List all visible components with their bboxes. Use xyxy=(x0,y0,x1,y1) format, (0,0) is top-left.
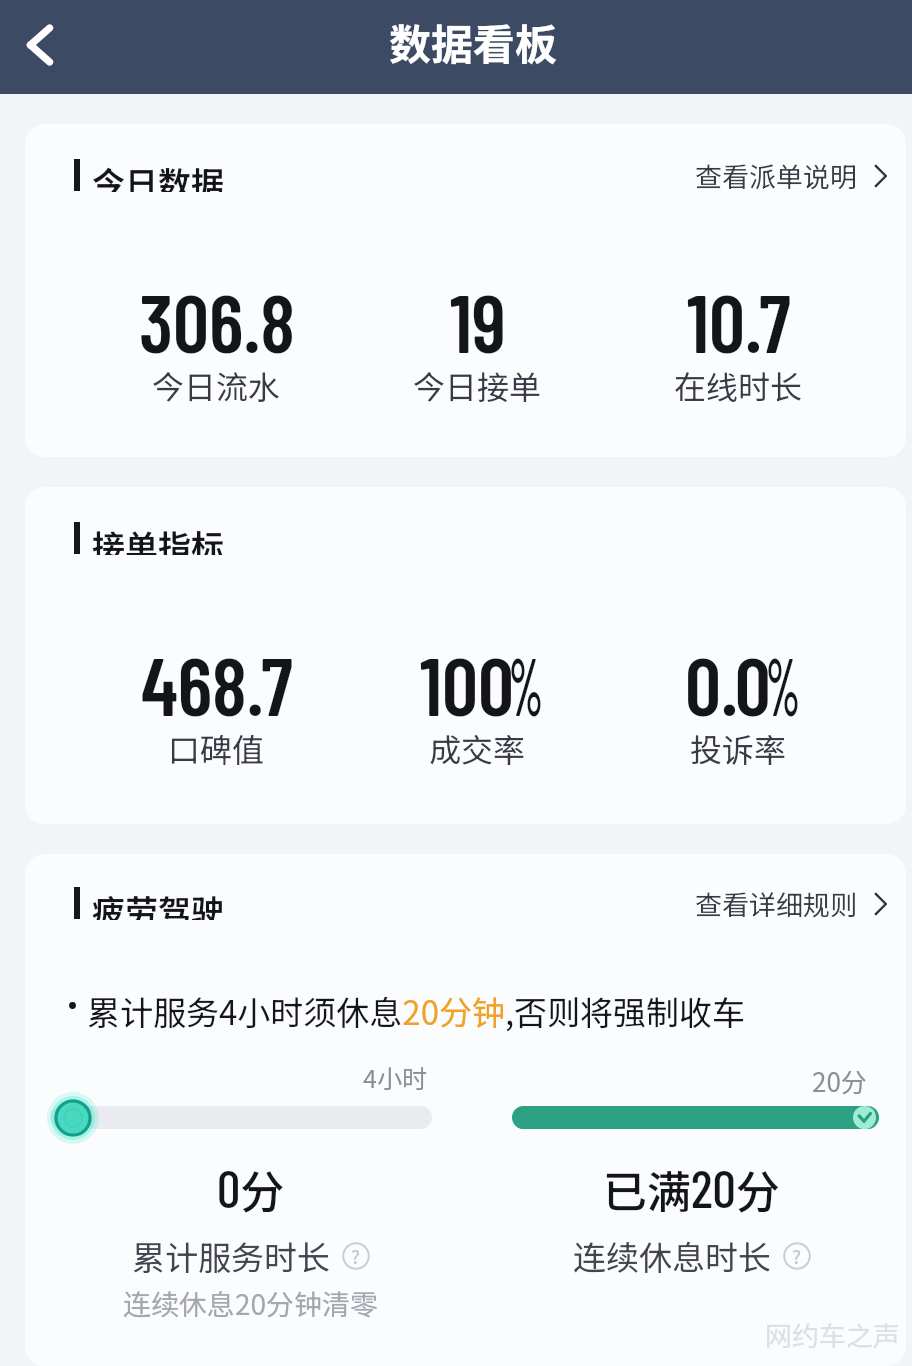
staticText: 连续休息时长 xyxy=(573,1232,771,1280)
staticText: 306.8 xyxy=(139,273,295,369)
button[interactable]: Help xyxy=(342,1242,370,1270)
staticText: 连续休息20分钟清零 xyxy=(123,1283,379,1324)
staticText: ? xyxy=(792,1242,802,1270)
staticText: 19 xyxy=(450,273,506,369)
staticText: ? xyxy=(351,1242,361,1270)
staticText: 投诉率 xyxy=(690,725,787,771)
staticText: % xyxy=(766,636,778,732)
staticText: 数据看板 xyxy=(389,11,558,72)
staticText: 已满20分 xyxy=(603,1156,780,1221)
staticText: 在线时长 xyxy=(674,362,803,408)
staticText: 查看派单说明 xyxy=(695,156,857,195)
staticText: 成交率 xyxy=(429,725,526,771)
button[interactable]: Help xyxy=(783,1242,811,1270)
staticText: % xyxy=(509,636,521,732)
staticText: 10.7 xyxy=(687,273,791,369)
staticText: 今日数据 xyxy=(92,158,224,192)
staticText: 20分 xyxy=(812,1062,867,1100)
staticText: 100 xyxy=(420,636,514,732)
staticText: 疲劳驾驶 xyxy=(92,886,224,920)
staticText: 今日流水 xyxy=(152,362,281,408)
button[interactable]: 查看派单说明 xyxy=(691,152,894,199)
staticText: 累计服务4小时须休息20分钟,否则将强制收车 xyxy=(87,987,746,1035)
staticText: 今日接单 xyxy=(413,362,542,408)
staticText: 查看详细规则 xyxy=(695,884,857,923)
staticText: 0分 xyxy=(217,1156,285,1221)
button[interactable]: 查看详细规则 xyxy=(691,880,894,927)
staticText: 0.0 xyxy=(685,636,771,732)
button[interactable]: Back xyxy=(8,13,72,77)
staticText: 累计服务时长 xyxy=(132,1232,330,1280)
staticText: 网约车之声 xyxy=(765,1315,900,1354)
staticText: 接单指标 xyxy=(92,521,224,555)
staticText: 468.7 xyxy=(141,636,293,732)
staticText: 口碑值 xyxy=(168,725,265,771)
staticText: 4小时 xyxy=(363,1059,427,1095)
